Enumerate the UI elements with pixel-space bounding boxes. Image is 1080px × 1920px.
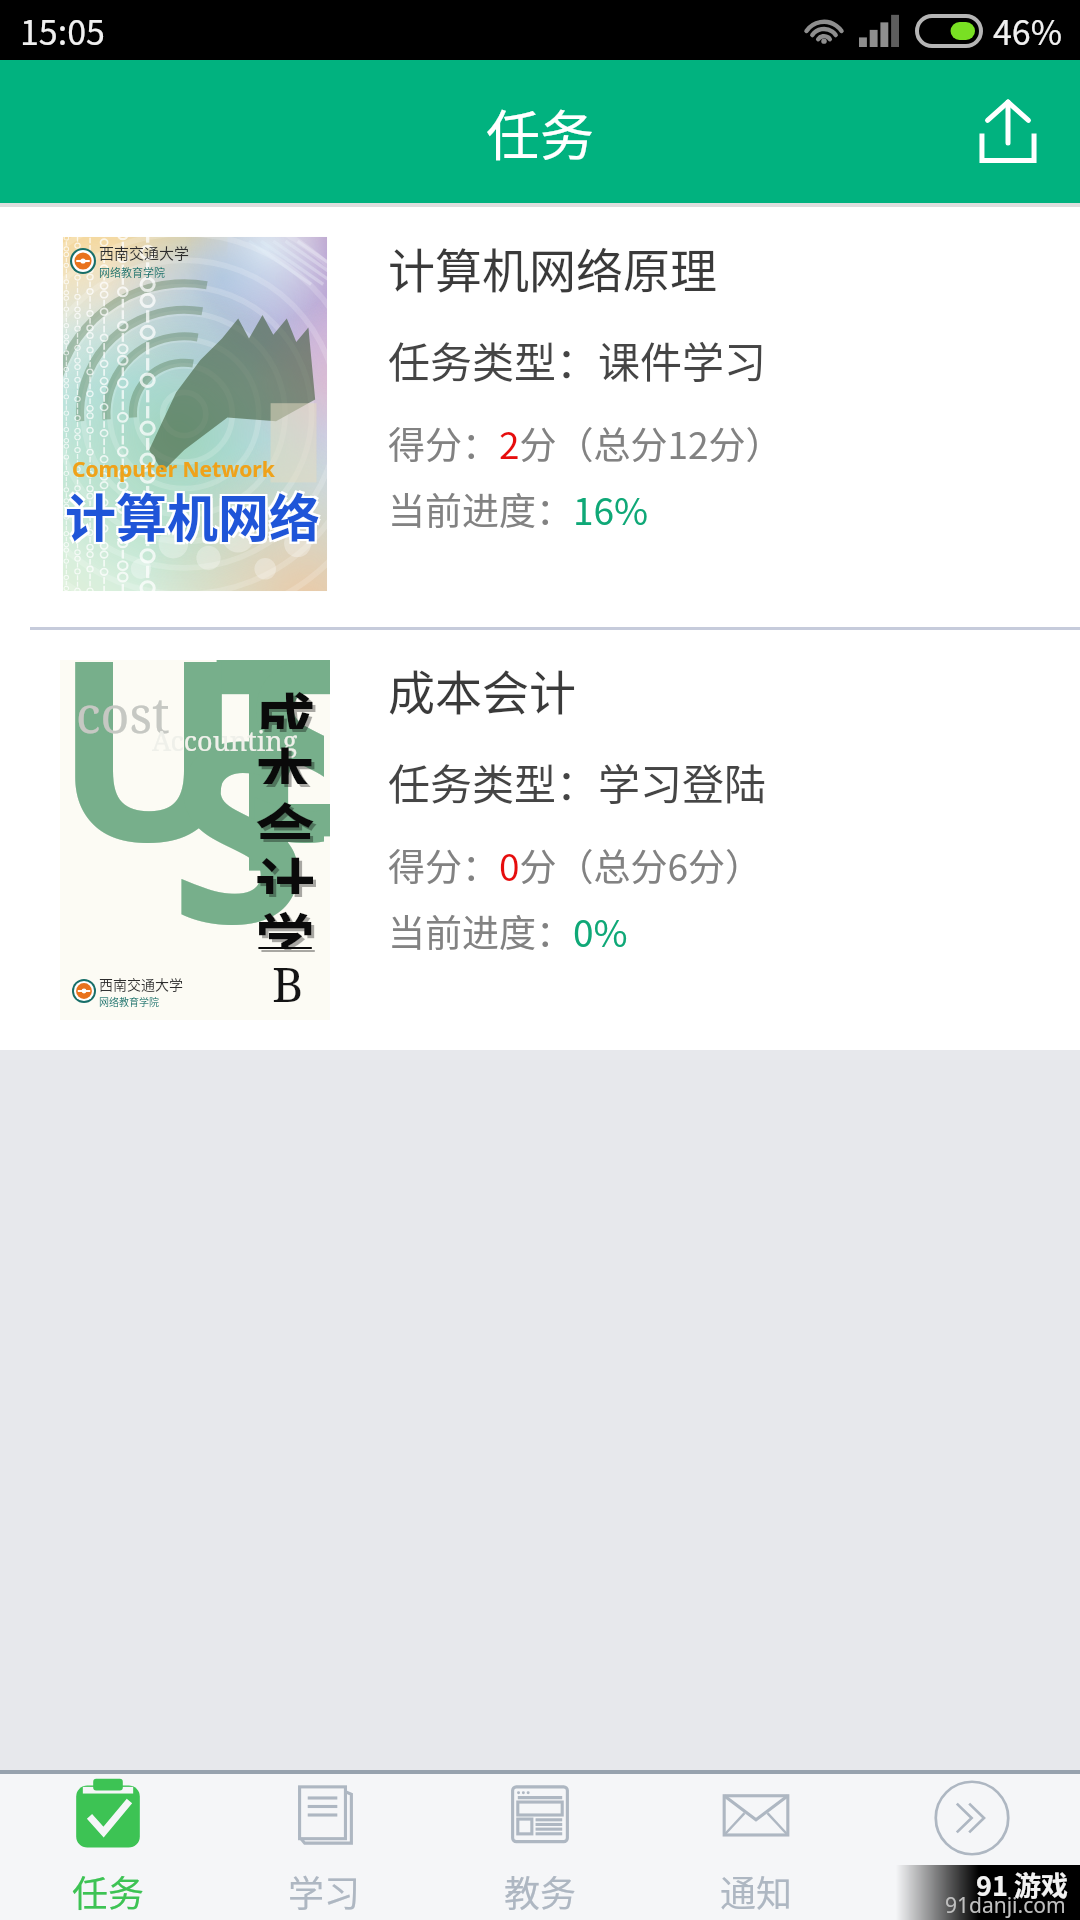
button[interactable]: 任务 <box>0 1774 216 1920</box>
staticText: UST <box>60 660 324 915</box>
staticText: 计算机网络 <box>67 476 323 550</box>
staticText: 计算机网络 <box>65 478 321 552</box>
staticText: 计 <box>258 842 318 897</box>
staticText: 任务类型：课件学习 <box>388 329 767 390</box>
staticText: 学习 <box>288 1865 361 1917</box>
button[interactable]: 通知 <box>648 1774 864 1920</box>
staticText: 通知 <box>720 1865 793 1917</box>
button[interactable]: More <box>864 1774 1080 1920</box>
staticText: 91danji.com <box>945 1891 1066 1920</box>
staticText: B <box>272 951 304 1016</box>
staticText: 会 <box>258 787 318 842</box>
staticText: 会 <box>255 784 315 839</box>
button[interactable]: UST <box>0 655 1080 1075</box>
staticText: 本 <box>258 732 318 787</box>
staticText: 计算机网络 <box>67 480 323 554</box>
staticText: 西南交通大学 <box>99 974 183 994</box>
staticText: 任务类型：学习登陆 <box>388 751 767 812</box>
staticText: 网络教育学院 <box>99 264 165 280</box>
button[interactable]: 学习 <box>216 1774 432 1920</box>
staticText: 得分：2分（总分12分） <box>388 416 783 470</box>
staticText: Accounting <box>152 722 298 759</box>
button[interactable]: 教务 <box>432 1774 648 1920</box>
button[interactable]: 西南交通大学 <box>0 207 1080 627</box>
staticText: 当前进度：16% <box>388 482 649 536</box>
staticText: cost <box>76 680 170 748</box>
staticText: 西南交通大学 <box>99 242 190 264</box>
staticText: 15:05 <box>20 6 105 55</box>
staticText: 计算机网络 <box>63 480 319 554</box>
staticText: 计算机网络 <box>63 476 319 550</box>
staticText: 教务 <box>504 1865 577 1917</box>
staticText: 当前进度：0% <box>388 904 628 958</box>
staticText: 成 <box>258 677 318 732</box>
staticText: 46% <box>993 6 1063 55</box>
staticText: 网络教育学院 <box>99 994 159 1008</box>
staticText: S <box>170 660 308 997</box>
staticText: 本 <box>255 729 315 784</box>
staticText: Computer Network <box>72 455 275 484</box>
staticText: 成本会计 <box>388 655 576 723</box>
staticText: 任务 <box>72 1865 145 1917</box>
staticText: 91 游戏 <box>976 1865 1068 1904</box>
staticText: 学 <box>255 894 315 949</box>
staticText: 得分：0分（总分6分） <box>388 838 763 892</box>
staticText: 任务 <box>486 93 594 171</box>
staticText: 计 <box>255 839 315 894</box>
staticText: 成 <box>255 674 315 729</box>
staticText: 计算机网络原理 <box>388 233 717 301</box>
staticText: 学 <box>258 897 318 952</box>
button[interactable]: Upload <box>960 84 1056 180</box>
